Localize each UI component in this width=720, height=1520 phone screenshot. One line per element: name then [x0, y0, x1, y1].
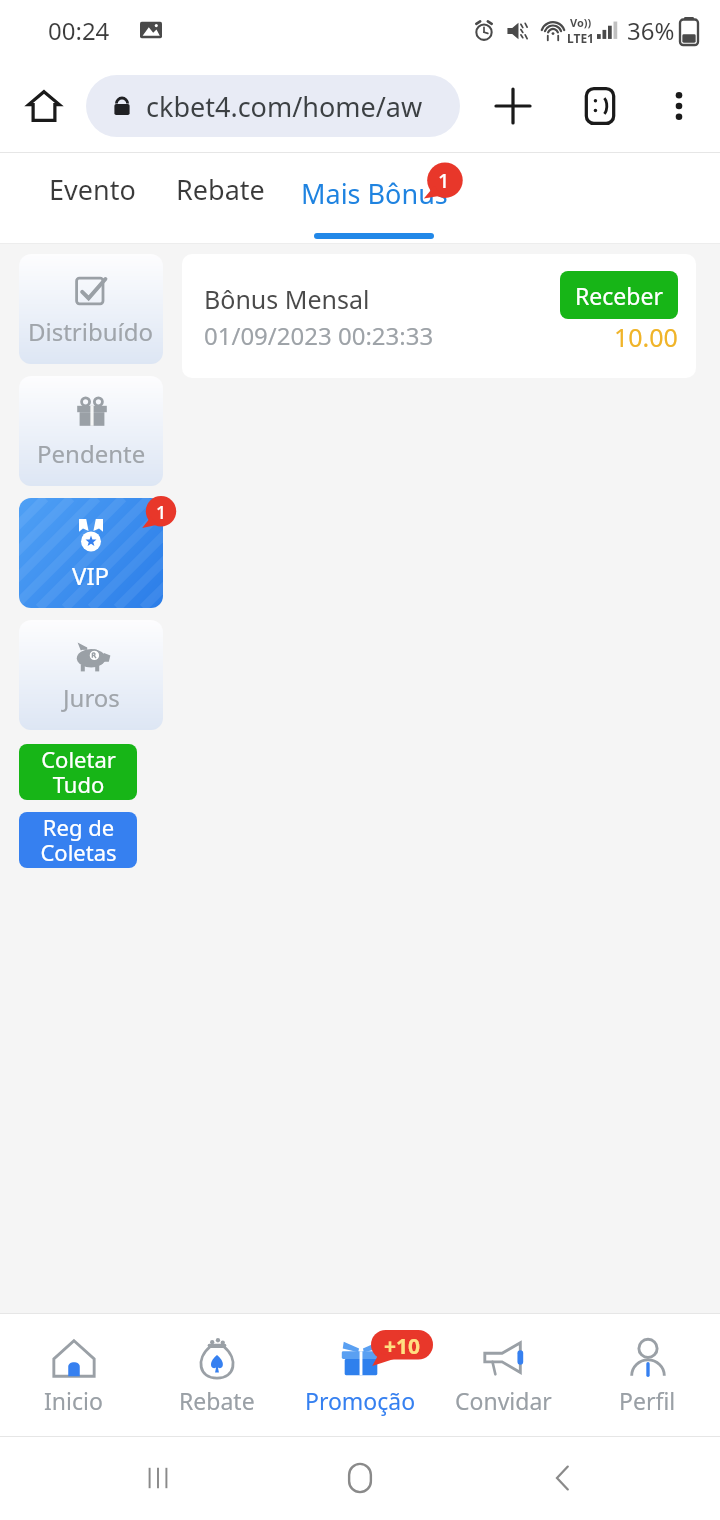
staticText: Pendente: [37, 437, 146, 470]
staticText: ckbet4.com/home/aw: [146, 88, 423, 125]
button[interactable]: Pendente: [19, 376, 163, 486]
staticText: Reg de Coletas: [40, 812, 117, 868]
button[interactable]: Home: [315, 1436, 405, 1520]
button[interactable]: More options: [650, 77, 708, 135]
button[interactable]: Rebate: [148, 153, 292, 225]
staticText: +10: [384, 1332, 421, 1361]
staticText: LTE1: [567, 30, 594, 46]
button[interactable]: Promoção: [290, 1314, 430, 1436]
staticText: Evento: [49, 171, 136, 208]
staticText: Perfil: [619, 1385, 676, 1416]
staticText: VIP: [72, 559, 110, 592]
staticText: Rebate: [176, 171, 265, 208]
button[interactable]: Perfil: [577, 1314, 717, 1436]
button[interactable]: Home: [16, 78, 72, 134]
staticText: 36%: [627, 14, 675, 47]
button[interactable]: Receber: [560, 271, 678, 319]
button[interactable]: Back: [518, 1436, 608, 1520]
button[interactable]: Inicio: [3, 1314, 143, 1436]
staticText: Bônus Mensal: [204, 282, 370, 316]
staticText: 00:24: [48, 14, 110, 47]
staticText: 01/09/2023 00:23:33: [204, 319, 434, 352]
staticText: Convidar: [455, 1385, 552, 1416]
staticText: 1: [438, 167, 450, 194]
button[interactable]: Juros: [19, 620, 163, 730]
staticText: Promoção: [305, 1385, 416, 1416]
button[interactable]: Mais Bônus: [292, 153, 456, 243]
staticText: Rebate: [179, 1385, 255, 1416]
button[interactable]: Convidar: [433, 1314, 573, 1436]
button[interactable]: Distribuído: [19, 254, 163, 364]
button[interactable]: Evento: [20, 153, 164, 225]
button[interactable]: Tabs: [568, 74, 632, 138]
staticText: Mais Bônus: [301, 175, 448, 212]
button[interactable]: Bônus Mensal: [182, 254, 696, 378]
staticText: 1: [156, 500, 167, 525]
button[interactable]: Reg de Coletas: [19, 812, 137, 868]
staticText: Coletar Tudo: [41, 744, 116, 800]
staticText: Receber: [575, 280, 663, 311]
button[interactable]: Recents: [113, 1436, 203, 1520]
button[interactable]: New tab: [482, 75, 544, 137]
staticText: Vo)): [570, 15, 592, 30]
button[interactable]: ckbet4.com/home/aw: [86, 75, 460, 137]
staticText: Distribuído: [28, 315, 154, 348]
staticText: 10.00: [614, 320, 678, 354]
button[interactable]: Rebate: [147, 1314, 287, 1436]
staticText: Juros: [63, 681, 120, 714]
button[interactable]: VIP: [19, 498, 163, 608]
button[interactable]: Coletar Tudo: [19, 744, 137, 800]
staticText: Inicio: [44, 1385, 103, 1416]
